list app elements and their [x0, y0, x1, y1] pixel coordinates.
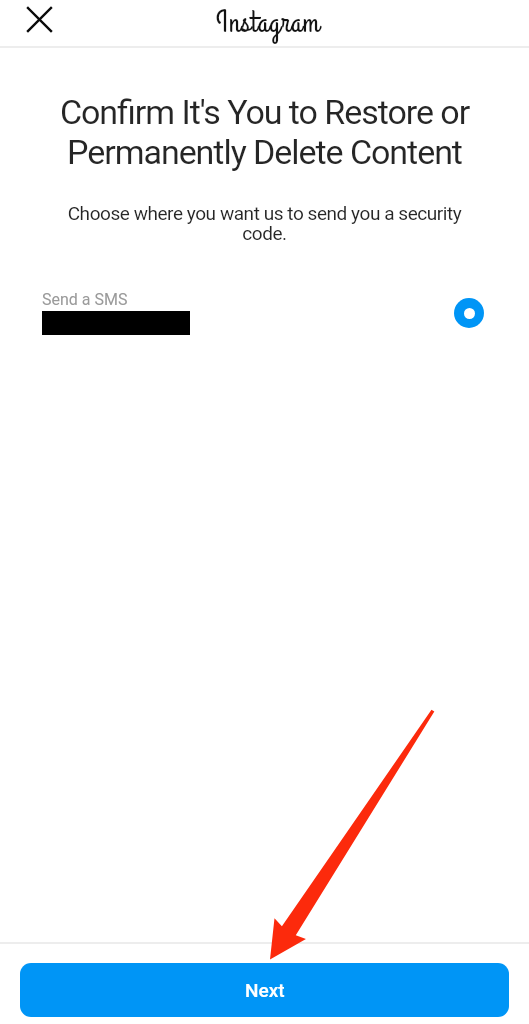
button[interactable]: Close [17, 0, 61, 41]
button[interactable]: Next [20, 963, 509, 1017]
staticText: Next [245, 979, 285, 1001]
staticText: Confirm It's You to Restore or Permanent… [30, 92, 499, 172]
staticText: Send a SMS [42, 290, 128, 309]
button[interactable]: Send a SMS [0, 290, 529, 335]
staticText: Instagram [216, 3, 321, 44]
staticText: Choose where you want us to send you a s… [62, 202, 467, 244]
